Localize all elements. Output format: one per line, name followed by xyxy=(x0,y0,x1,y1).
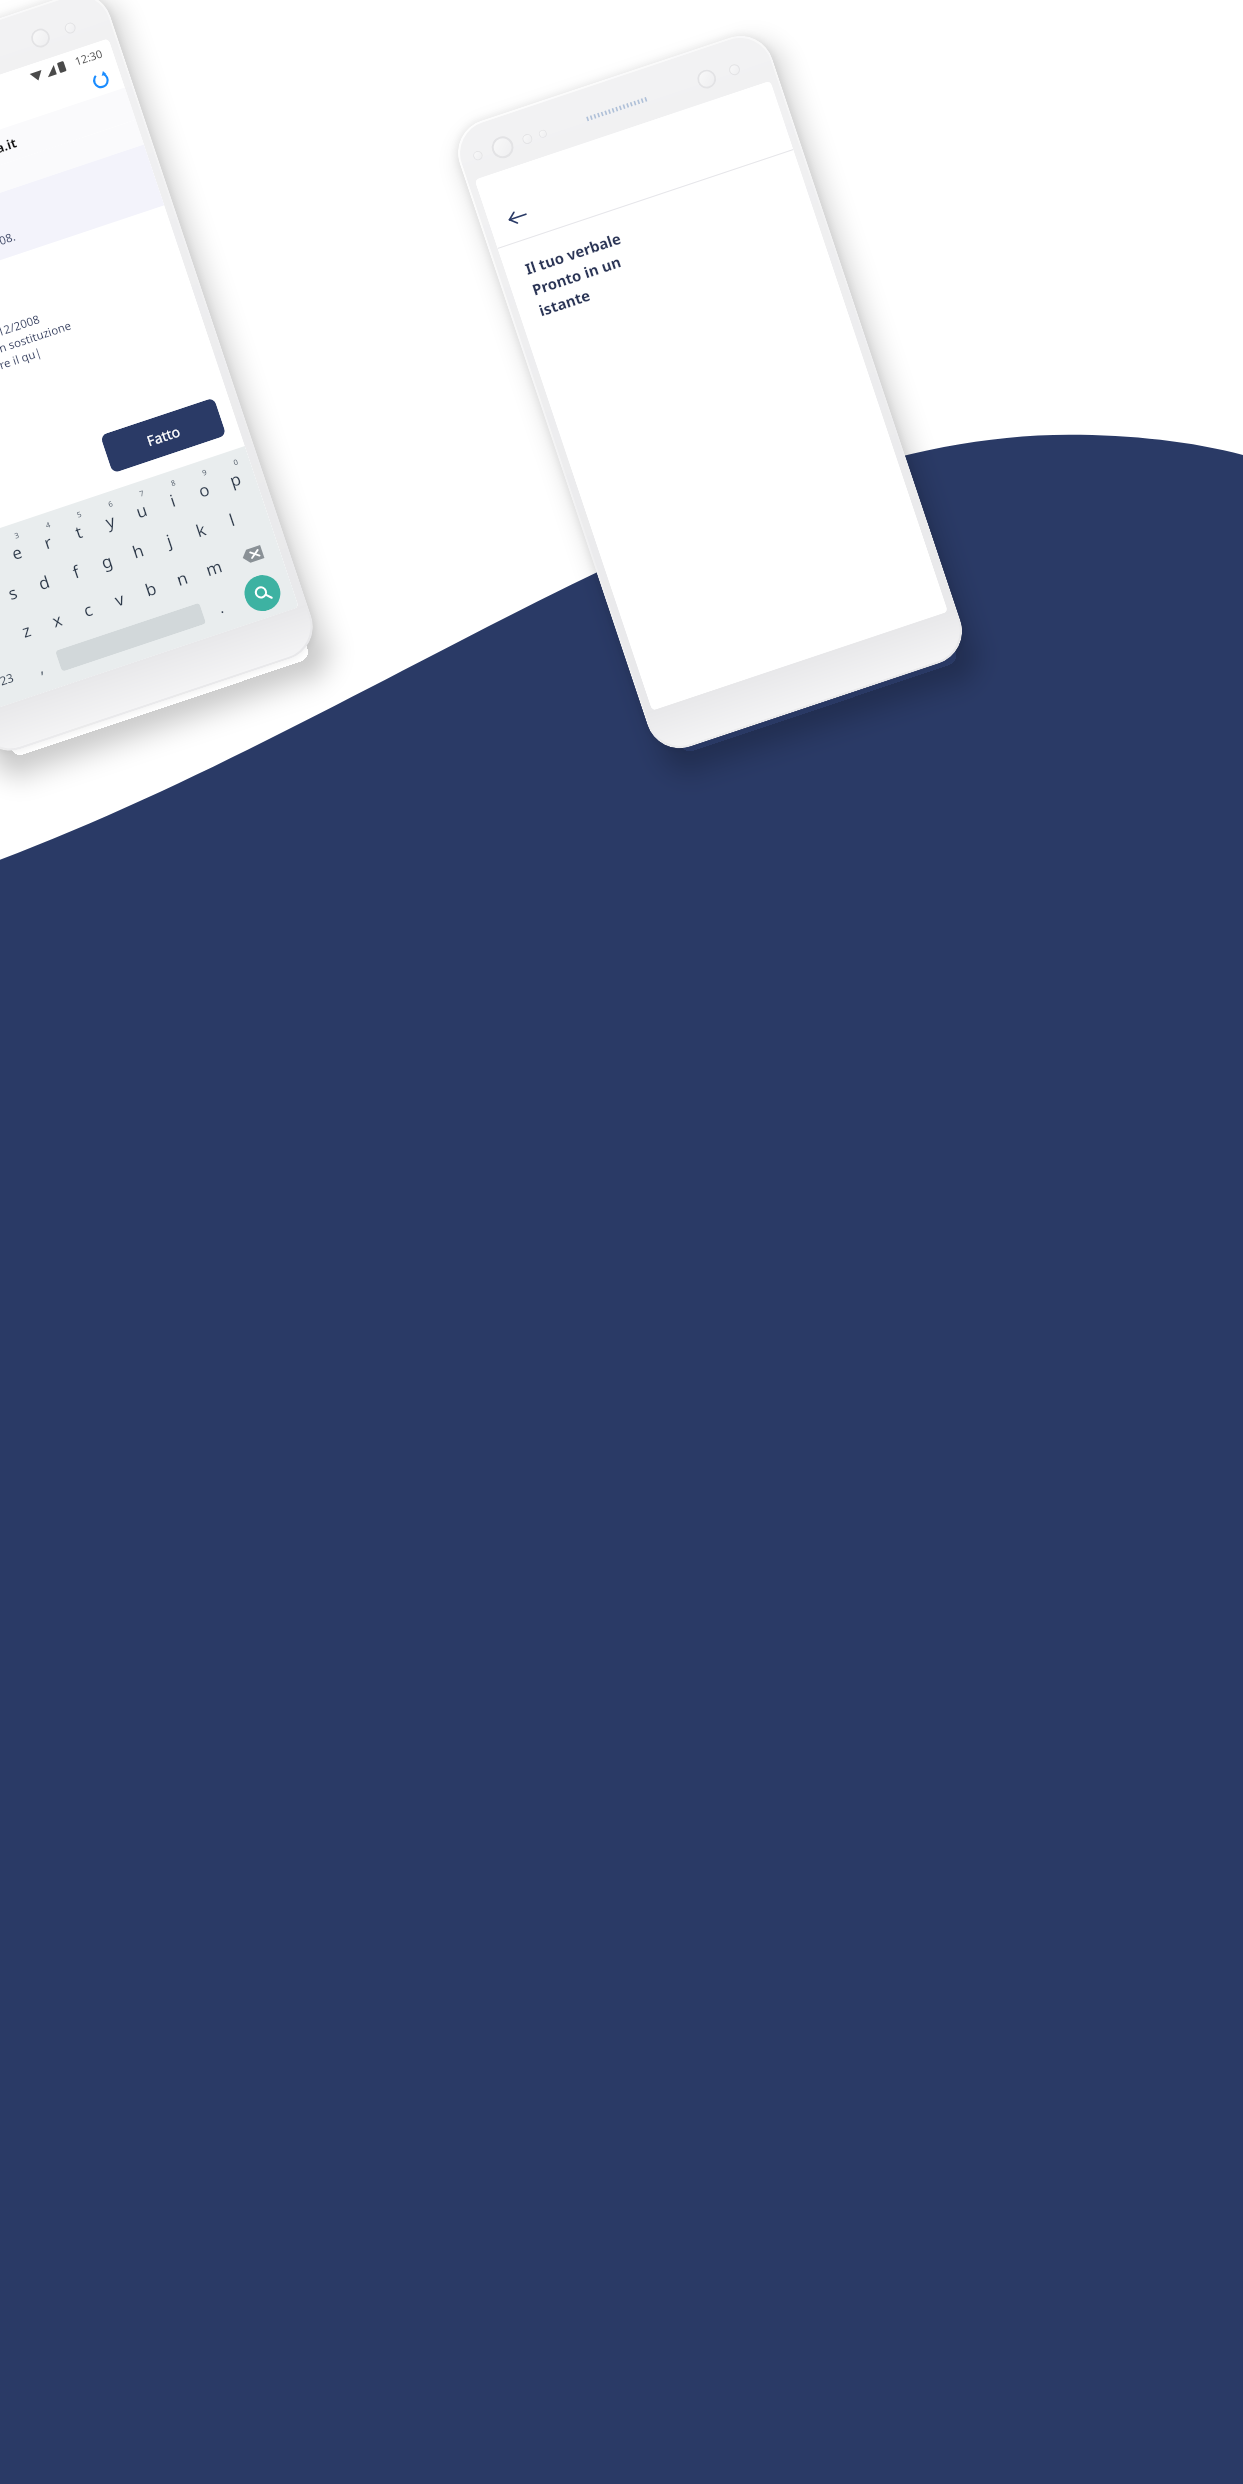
staticText: 12:30 xyxy=(73,45,105,69)
staticText: . xyxy=(216,597,227,617)
staticText: x xyxy=(49,608,65,633)
button[interactable]: g xyxy=(85,537,129,585)
staticText: o xyxy=(195,477,213,502)
button[interactable]: z xyxy=(3,606,47,654)
button[interactable]: 9 xyxy=(181,462,225,511)
button[interactable]: 5 xyxy=(56,504,100,552)
staticText: u xyxy=(133,498,150,523)
button[interactable]: l xyxy=(210,495,254,543)
button[interactable]: 7 xyxy=(118,483,162,532)
button[interactable]: Spazio xyxy=(55,603,206,672)
button[interactable]: ?123 xyxy=(0,654,31,708)
staticText: dell'avvocato, il dottore il qu| xyxy=(0,344,44,409)
staticText: 4 xyxy=(44,519,52,530)
staticText: k xyxy=(193,517,210,542)
staticText: j xyxy=(163,529,175,552)
staticText: s xyxy=(5,580,21,605)
button[interactable]: x xyxy=(35,595,79,644)
staticText: Udienza del giorno 27/12/2008 xyxy=(0,311,42,379)
button[interactable]: . xyxy=(198,583,243,631)
staticText: 7 xyxy=(138,488,146,499)
staticText: Fatto xyxy=(144,421,183,450)
button[interactable]: k xyxy=(179,505,223,554)
button[interactable]: b xyxy=(129,564,173,612)
staticText: d xyxy=(35,570,53,595)
staticText: Udienza del giorno 27/12/2008. xyxy=(0,228,18,298)
button[interactable]: d xyxy=(22,558,66,606)
staticText: 5 xyxy=(75,509,83,520)
button[interactable]: Fatto xyxy=(100,397,226,473)
button[interactable]: f xyxy=(53,547,97,595)
button[interactable]: s xyxy=(0,568,35,616)
staticText: r xyxy=(41,530,56,554)
staticText: 0 xyxy=(232,456,240,467)
staticText: l xyxy=(226,508,238,531)
button[interactable]: Indietro xyxy=(496,195,539,238)
staticText: f xyxy=(69,560,82,583)
staticText: b xyxy=(142,576,160,601)
staticText: t xyxy=(72,520,86,544)
button[interactable]: 8 xyxy=(150,473,194,521)
button[interactable]: c xyxy=(66,585,110,633)
button[interactable]: Cerca xyxy=(240,570,285,616)
staticText: ?123 xyxy=(0,669,15,692)
staticText: 9 xyxy=(201,467,208,478)
staticText: 8 xyxy=(169,477,177,488)
button[interactable]: m xyxy=(191,543,235,592)
staticText: g xyxy=(98,549,116,574)
button[interactable]: 4 xyxy=(25,515,69,563)
button[interactable]: n xyxy=(160,554,204,602)
staticText: n xyxy=(173,566,191,591)
button[interactable]: 6 xyxy=(87,494,131,542)
staticText: Per l'attore compare, in sostituzione xyxy=(0,317,74,394)
staticText: e xyxy=(8,540,25,565)
button[interactable]: Aggiorna xyxy=(81,61,119,99)
staticText: h xyxy=(129,538,147,563)
button[interactable]: 3 xyxy=(0,525,37,573)
button[interactable]: h xyxy=(116,526,160,575)
button[interactable]: j xyxy=(147,516,191,564)
staticText: z xyxy=(19,618,34,643)
staticText: v xyxy=(112,587,127,612)
button[interactable]: www.aiga.it xyxy=(0,88,136,226)
staticText: p xyxy=(227,467,244,492)
button[interactable]: Backspace xyxy=(222,528,282,581)
staticText: , xyxy=(35,657,47,677)
button[interactable]: , xyxy=(18,643,63,692)
staticText: y xyxy=(102,509,118,534)
button[interactable]: 0 xyxy=(212,452,256,500)
staticText: Il tuo verbale Pronto in un istante xyxy=(522,228,638,321)
button[interactable]: v xyxy=(97,575,141,623)
staticText: i xyxy=(167,488,179,512)
staticText: c xyxy=(80,597,96,622)
staticText: 3 xyxy=(13,529,21,541)
staticText: www.aiga.it xyxy=(0,133,19,175)
staticText: 6 xyxy=(107,498,115,509)
staticText: m xyxy=(203,554,225,581)
